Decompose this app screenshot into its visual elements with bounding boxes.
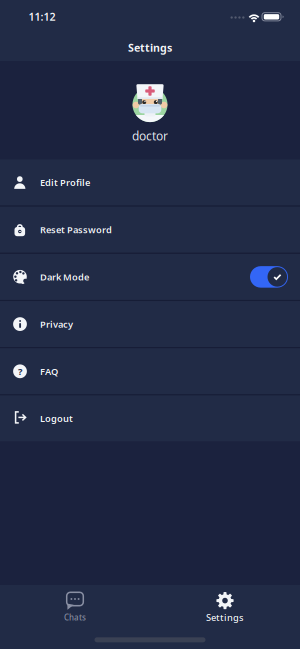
button[interactable]: Privacy bbox=[0, 301, 300, 347]
staticText: Privacy bbox=[40, 318, 73, 330]
staticText: ? bbox=[18, 365, 22, 377]
staticText: Chats bbox=[64, 612, 86, 623]
button[interactable]: Edit Profile bbox=[0, 159, 300, 205]
staticText: Dark Mode bbox=[40, 271, 89, 283]
staticText: FAQ bbox=[40, 365, 58, 377]
staticText: Edit Profile bbox=[40, 176, 90, 189]
button[interactable]: Settings bbox=[150, 585, 300, 631]
staticText: Settings bbox=[128, 40, 172, 55]
staticText: doctor bbox=[132, 128, 168, 144]
button[interactable]: Logout bbox=[0, 395, 300, 441]
button[interactable]: Dark Mode bbox=[250, 266, 288, 288]
staticText: Reset Password bbox=[40, 223, 112, 236]
staticText: Settings bbox=[206, 611, 244, 623]
button[interactable]: Chats bbox=[0, 585, 150, 631]
staticText: Logout bbox=[40, 412, 73, 425]
button[interactable]: Reset Password bbox=[0, 207, 300, 253]
staticText: 11:12 bbox=[28, 9, 55, 24]
button[interactable]: ? bbox=[0, 348, 300, 394]
